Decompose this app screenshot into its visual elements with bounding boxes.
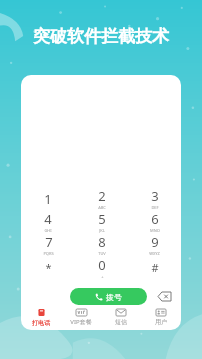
button[interactable]: 0 (75, 256, 128, 279)
button[interactable]: 打电话 (21, 307, 61, 328)
staticText: PQRS (43, 251, 54, 256)
button[interactable]: 7 (21, 233, 75, 256)
staticText: 用户 (155, 318, 167, 326)
staticText: 2 (98, 187, 106, 205)
staticText: 7 (45, 233, 53, 251)
staticText: DEF (151, 205, 159, 210)
staticText: WXYZ (149, 251, 160, 256)
staticText: 4 (44, 210, 52, 228)
staticText: MNO (150, 228, 160, 233)
button[interactable]: VIP套餐 (61, 307, 101, 328)
staticText: 6 (151, 210, 159, 228)
button[interactable]: 短信 (101, 307, 141, 328)
staticText: 8 (98, 233, 106, 251)
staticText: 9 (151, 233, 159, 251)
staticText: 打电话 (32, 319, 50, 327)
button[interactable]: 4 (21, 210, 75, 233)
button[interactable]: 3 (128, 187, 181, 210)
button[interactable]: 6 (128, 210, 181, 233)
staticText: 短信 (115, 318, 127, 326)
button[interactable]: 用户 (141, 307, 181, 328)
button[interactable]: 9 (128, 233, 181, 256)
staticText: VIP套餐 (70, 318, 92, 326)
staticText: # (151, 260, 159, 275)
button[interactable]: # (128, 256, 181, 279)
staticText: TUV (98, 251, 106, 256)
staticText: 1 (44, 190, 52, 208)
button[interactable]: 8 (75, 233, 128, 256)
staticText: 拨号 (106, 292, 122, 302)
staticText: 0 (98, 256, 106, 274)
button[interactable]: 2 (75, 187, 128, 210)
button[interactable]: * (21, 256, 75, 279)
staticText: GHI (44, 228, 52, 233)
staticText: 5 (98, 210, 106, 228)
button[interactable]: 1 (21, 187, 75, 210)
button[interactable]: 拨号 (70, 288, 147, 305)
staticText: 3 (151, 187, 159, 205)
staticText: + (101, 274, 104, 279)
button[interactable]: 5 (75, 210, 128, 233)
staticText: 突破软件拦截技术 (33, 26, 169, 47)
staticText: * (45, 260, 52, 275)
staticText: JKL (99, 228, 105, 233)
button[interactable]: Backspace (154, 286, 174, 306)
staticText: ABC (98, 205, 106, 210)
